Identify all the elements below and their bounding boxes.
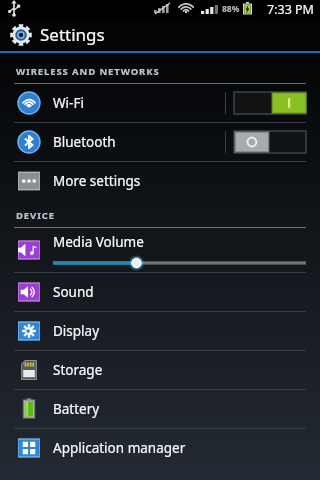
button[interactable]: Settings <box>0 18 320 51</box>
other: Settings <box>9 23 33 47</box>
staticText: More settings <box>53 172 141 190</box>
button[interactable]: Off <box>234 131 306 153</box>
button[interactable]: Display <box>0 312 320 350</box>
staticText: Settings <box>40 23 105 46</box>
button[interactable]: Battery <box>0 390 320 428</box>
staticText: Application manager <box>53 439 186 457</box>
button[interactable]: Wi-Fi <box>0 84 320 122</box>
button[interactable]: Media Volume <box>0 228 320 272</box>
button[interactable]: On <box>234 92 306 114</box>
staticText: Sound <box>53 283 94 301</box>
staticText: 7:33 PM <box>267 1 314 18</box>
staticText: Storage <box>53 361 103 379</box>
button[interactable]: Sound <box>0 273 320 311</box>
staticText: Media Volume <box>53 233 144 251</box>
staticText: Battery <box>53 400 100 418</box>
staticText: Display <box>53 322 100 340</box>
button[interactable]: Storage <box>0 351 320 389</box>
staticText: Bluetooth <box>53 133 116 151</box>
button[interactable]: Bluetooth <box>0 123 320 161</box>
staticText: Wi-Fi <box>53 94 84 112</box>
staticText: WIRELESS AND NETWORKS <box>16 65 160 78</box>
staticText: DEVICE <box>16 209 55 222</box>
button[interactable]: More settings <box>0 162 320 200</box>
button[interactable]: Application manager <box>0 429 320 467</box>
staticText: 88% <box>222 3 240 15</box>
